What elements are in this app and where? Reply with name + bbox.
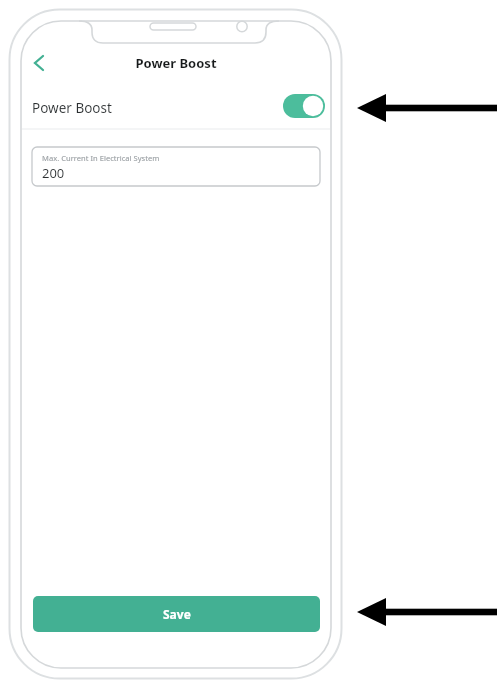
staticText: Max. Current In Electrical System (42, 153, 160, 163)
staticText: Power Boost (32, 99, 112, 117)
button[interactable] (32, 147, 320, 186)
staticText: Power Boost (135, 54, 217, 72)
button[interactable]: Power Boost toggle (281, 92, 327, 120)
button[interactable]: Back (25, 50, 53, 78)
staticText: 200 (42, 164, 65, 182)
button[interactable]: Save (33, 596, 320, 632)
staticText: Save (163, 606, 191, 622)
